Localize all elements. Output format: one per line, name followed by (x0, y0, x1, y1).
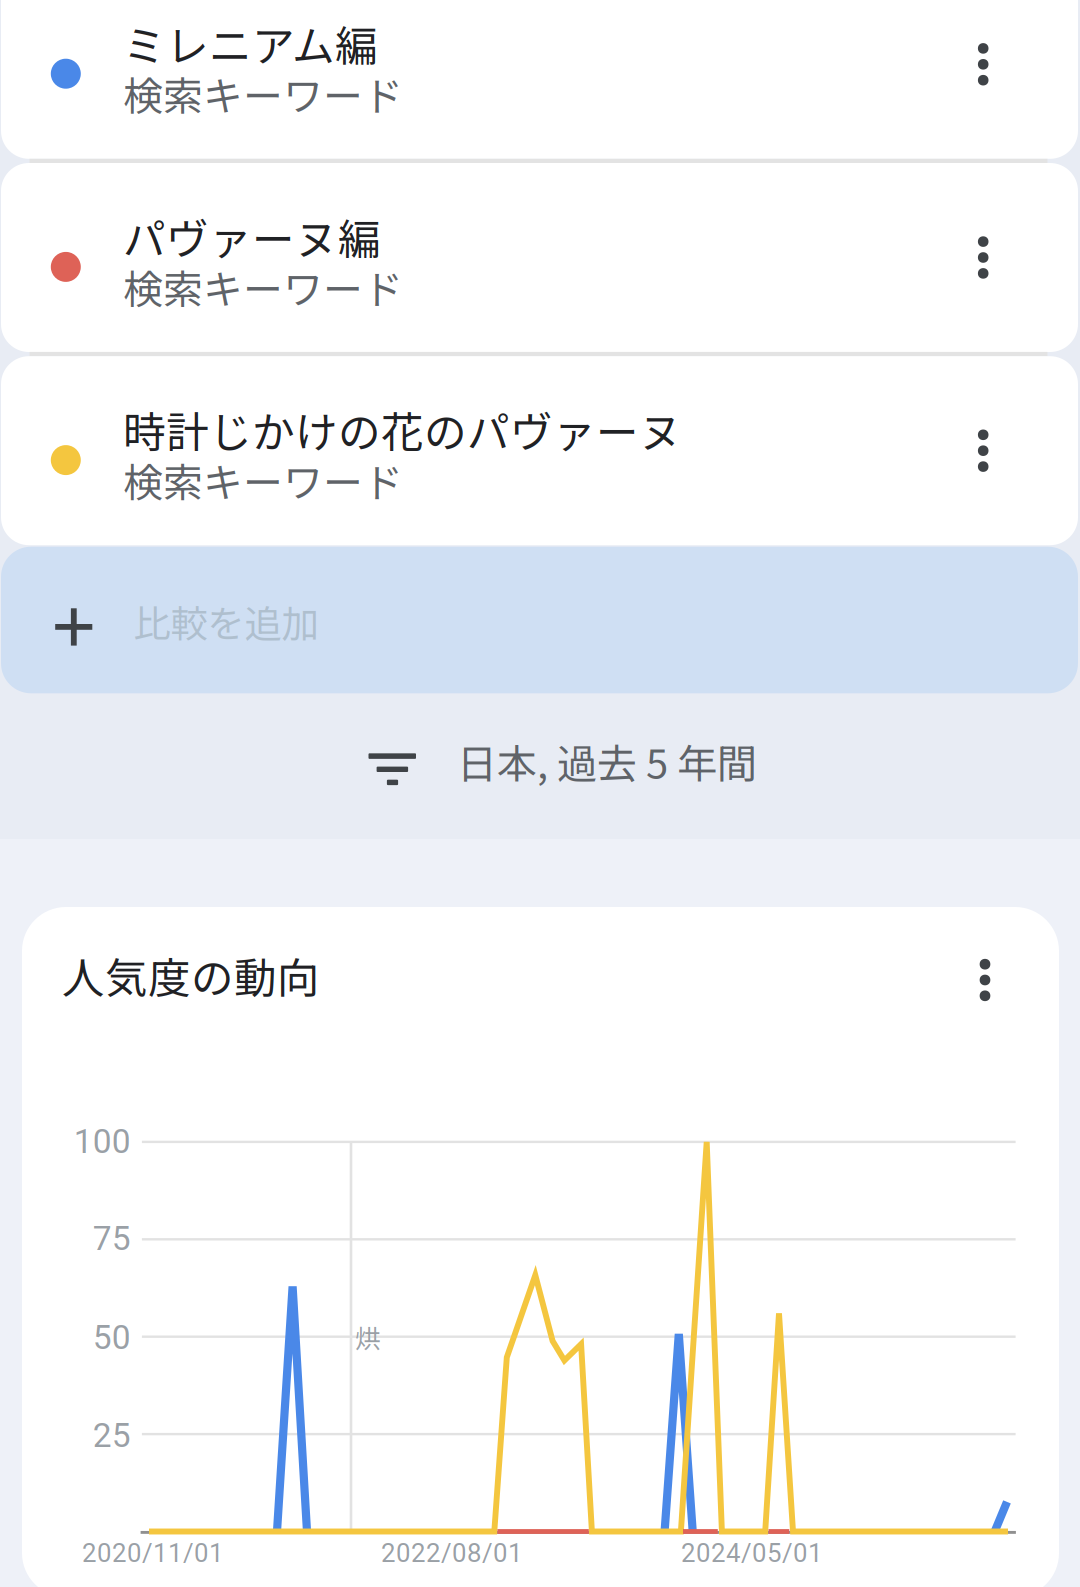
staticText: 人気度の動向 (62, 944, 320, 1006)
button[interactable]: その他のオプション (935, 209, 1031, 305)
staticText: 50 (93, 1318, 131, 1357)
button[interactable]: 比較を追加 (1, 547, 1078, 693)
staticText: 時計じかけの花のパヴァーヌ (123, 399, 682, 460)
staticText: 100 (74, 1122, 131, 1161)
button[interactable]: その他のオプション (935, 403, 1031, 499)
staticText: 比較を追加 (133, 594, 318, 648)
staticText: 25 (93, 1416, 131, 1455)
staticText: 2020/11/01 (82, 1538, 224, 1568)
button[interactable]: 日本, 過去 5 年間 (355, 735, 800, 835)
staticText: 検索キーワード (123, 451, 403, 509)
staticText: 検索キーワード (123, 258, 403, 315)
staticText: 烘 (355, 1318, 381, 1356)
staticText: パヴァーヌ編 (123, 205, 381, 267)
staticText: 日本, 過去 5 年間 (457, 732, 757, 790)
staticText: 検索キーワード (123, 65, 403, 122)
button[interactable]: グラフのオプション (937, 932, 1033, 1028)
staticText: 2024/05/01 (681, 1538, 823, 1568)
button[interactable]: その他のオプション (935, 16, 1031, 112)
staticText: ミレニアム編 (123, 12, 378, 74)
staticText: 2022/08/01 (381, 1538, 523, 1568)
button[interactable]: パヴァーヌ編 (1, 163, 1078, 352)
staticText: 75 (93, 1219, 131, 1258)
button[interactable]: ミレニアム編 (1, 0, 1078, 159)
button[interactable]: 時計じかけの花のパヴァーヌ (1, 356, 1078, 545)
